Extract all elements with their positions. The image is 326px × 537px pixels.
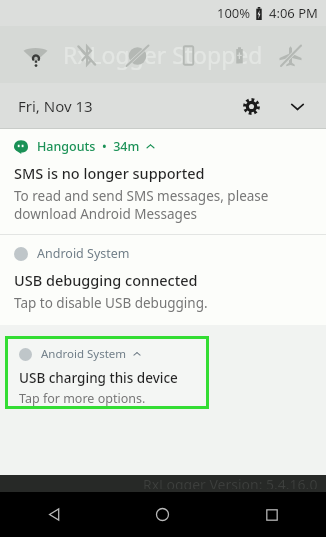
staticText: Android System: [37, 245, 130, 262]
staticText: RxLogger Version: 5.4.16.0: [143, 475, 318, 489]
button[interactable]: Device: [163, 34, 214, 76]
staticText: Tap for more options.: [19, 390, 146, 406]
button[interactable]: Expand quick settings: [280, 89, 314, 123]
staticText: Fri, Nov 13: [18, 96, 93, 116]
staticText: SMS is no longer supported: [14, 163, 205, 183]
staticText: download Android Messages: [14, 205, 197, 223]
staticText: USB charging this device: [19, 369, 178, 387]
button[interactable]: Android System: [8, 339, 206, 406]
button[interactable]: Recent apps: [217, 492, 326, 537]
staticText: Tap to disable USB debugging.: [14, 294, 208, 312]
button[interactable]: Location off: [112, 34, 163, 76]
staticText: 4:06 PM: [269, 4, 318, 22]
staticText: Hangouts • 34m: [37, 138, 140, 155]
button[interactable]: Battery saver: [214, 34, 265, 76]
staticText: Android System: [41, 346, 127, 362]
staticText: To read and send SMS messages, please: [14, 187, 269, 205]
button[interactable]: Hangouts • 34m: [0, 129, 326, 234]
button[interactable]: Back: [0, 492, 108, 537]
button[interactable]: Bluetooth off: [61, 34, 112, 76]
button[interactable]: Android System: [0, 235, 326, 325]
button[interactable]: Settings: [234, 89, 268, 123]
button[interactable]: Wi-Fi no internet: [10, 34, 61, 76]
staticText: 100%: [217, 4, 251, 22]
staticText: USB debugging connected: [14, 270, 198, 290]
staticText: RxLogger Stopped: [63, 39, 263, 70]
button[interactable]: Airplane mode off: [265, 34, 316, 76]
button[interactable]: Home: [108, 492, 217, 537]
